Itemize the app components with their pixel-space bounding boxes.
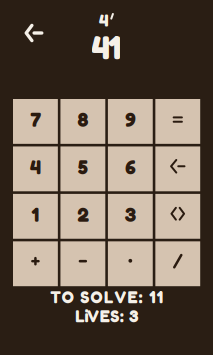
staticText: 6 — [125, 155, 135, 179]
staticText: 4 — [99, 9, 109, 30]
staticText: TO SOLVE: 11 — [50, 287, 163, 307]
button[interactable]: Plus — [13, 241, 58, 286]
staticText: 3 — [125, 202, 136, 226]
button[interactable]: Minus — [60, 241, 105, 286]
staticText: 1 — [31, 202, 39, 226]
staticText: 4 — [30, 155, 41, 179]
button[interactable]: Back — [12, 13, 56, 53]
button[interactable]: 8 — [60, 99, 105, 144]
button[interactable]: Equals — [155, 99, 200, 144]
staticText: 8 — [77, 107, 88, 131]
button[interactable]: Parentheses — [155, 194, 200, 239]
staticText: 7 — [30, 107, 40, 131]
button[interactable]: 6 — [108, 146, 153, 191]
button[interactable]: 7 — [13, 99, 58, 144]
staticText: LiVES: 3 — [75, 306, 138, 326]
button[interactable]: 5 — [60, 146, 105, 191]
staticText: 9 — [125, 107, 135, 131]
staticText: 5 — [78, 155, 88, 179]
staticText: 2 — [77, 202, 88, 226]
button[interactable]: 1 — [13, 194, 58, 239]
button[interactable]: 9 — [108, 99, 153, 144]
button[interactable]: Delete — [155, 146, 200, 191]
button[interactable]: Multiply — [108, 241, 153, 286]
button[interactable]: 2 — [60, 194, 105, 239]
button[interactable]: 3 — [108, 194, 153, 239]
button[interactable]: 4 — [13, 146, 58, 191]
staticText: 41 — [92, 27, 121, 67]
button[interactable]: Divide — [155, 241, 200, 286]
